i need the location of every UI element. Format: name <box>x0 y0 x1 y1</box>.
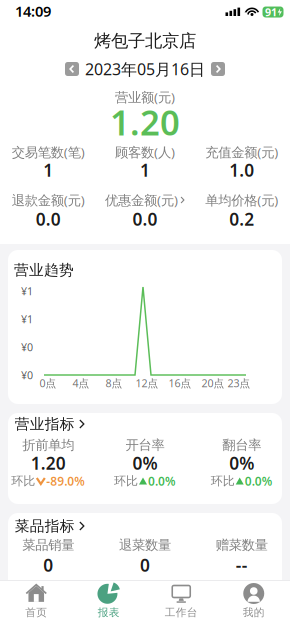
button[interactable]: 首页 <box>0 580 72 632</box>
staticText: 0% <box>132 451 157 474</box>
staticText: -- <box>236 553 248 576</box>
staticText: 0.0 <box>36 207 61 230</box>
staticText: 1 <box>43 158 53 181</box>
staticText: 交易笔数(笔) <box>12 143 85 161</box>
button[interactable]: 2023年05月16日 <box>85 58 205 80</box>
staticText: -89.0% <box>46 473 85 489</box>
staticText: 1.0 <box>229 158 254 181</box>
staticText: 20点 <box>201 376 224 390</box>
staticText: 营业额(元) <box>115 88 175 106</box>
button[interactable]: 工作台 <box>145 580 217 632</box>
staticText: 营业趋势 <box>14 261 74 279</box>
staticText: 烤包子北京店 <box>94 30 196 52</box>
staticText: 8点 <box>105 376 122 390</box>
staticText: 单均价格(元) <box>205 191 278 209</box>
staticText: 4点 <box>72 376 89 390</box>
staticText: 充值金额(元) <box>205 143 278 161</box>
staticText: 0.0% <box>148 473 176 489</box>
staticText: 环比 <box>211 474 235 488</box>
staticText: 折前单均 <box>22 437 74 453</box>
staticText: 16点 <box>168 376 191 390</box>
staticText: 0 <box>43 553 53 576</box>
button[interactable]: 报表 <box>72 580 145 632</box>
staticText: 菜品销量 <box>22 537 74 553</box>
staticText: 0.2 <box>229 207 254 230</box>
staticText: 14:09 <box>15 1 51 21</box>
staticText: 0.0 <box>132 207 157 230</box>
staticText: 首页 <box>25 606 47 619</box>
staticText: 工作台 <box>165 606 198 619</box>
staticText: ¥0 <box>21 368 33 382</box>
staticText: 我的 <box>243 606 265 619</box>
staticText: 0.0% <box>245 473 273 489</box>
staticText: 0 <box>140 553 150 576</box>
staticText: 2023年05月16日 <box>85 58 205 80</box>
button[interactable]: 我的 <box>217 580 290 632</box>
staticText: ¥1 <box>21 284 33 298</box>
staticText: 环比 <box>114 474 138 488</box>
staticText: 91 <box>265 5 277 19</box>
button[interactable]: 优惠金额 <box>97 188 193 230</box>
staticText: 优惠金额(元) <box>105 191 178 209</box>
staticText: 1.20 <box>110 99 180 145</box>
button[interactable]: 营业指标 <box>15 415 85 433</box>
staticText: 赠菜数量 <box>216 537 268 553</box>
staticText: 顾客数(人) <box>115 143 175 161</box>
staticText: 翻台率 <box>222 437 261 453</box>
staticText: 退款金额(元) <box>12 191 85 209</box>
staticText: 1.20 <box>31 451 66 474</box>
staticText: 开台率 <box>125 437 164 453</box>
staticText: 0% <box>229 451 254 474</box>
staticText: 退菜数量 <box>119 537 171 553</box>
staticText: ¥1 <box>21 312 33 326</box>
staticText: ¥0 <box>21 340 33 354</box>
button[interactable]: Previous day <box>65 62 79 76</box>
staticText: 报表 <box>98 606 120 619</box>
staticText: 12点 <box>135 376 158 390</box>
staticText: 菜品指标 <box>15 517 75 535</box>
staticText: 23点 <box>227 376 250 390</box>
staticText: 环比 <box>11 474 35 488</box>
staticText: 1 <box>140 158 150 181</box>
button[interactable]: Next day <box>211 62 225 76</box>
staticText: 0点 <box>39 376 56 390</box>
button[interactable]: 菜品指标 <box>15 517 85 535</box>
staticText: 营业指标 <box>15 415 75 433</box>
